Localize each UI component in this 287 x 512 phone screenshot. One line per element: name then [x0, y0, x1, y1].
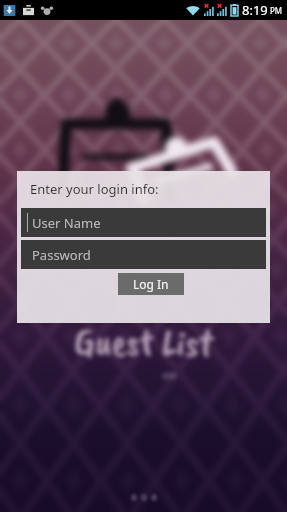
- staticText: app: [162, 369, 177, 380]
- button[interactable]: Menu: [129, 494, 159, 501]
- button[interactable]: Log In: [118, 273, 184, 295]
- staticText: 8:19: [242, 1, 268, 19]
- staticText: PM: [270, 5, 283, 16]
- staticText: User Name: [32, 214, 101, 232]
- staticText: Guest List: [74, 318, 213, 367]
- button[interactable]: Password: [21, 240, 266, 269]
- staticText: Log In: [133, 276, 169, 292]
- button[interactable]: User Name: [21, 208, 266, 237]
- staticText: Enter your login info:: [30, 180, 159, 198]
- staticText: Password: [32, 246, 91, 264]
